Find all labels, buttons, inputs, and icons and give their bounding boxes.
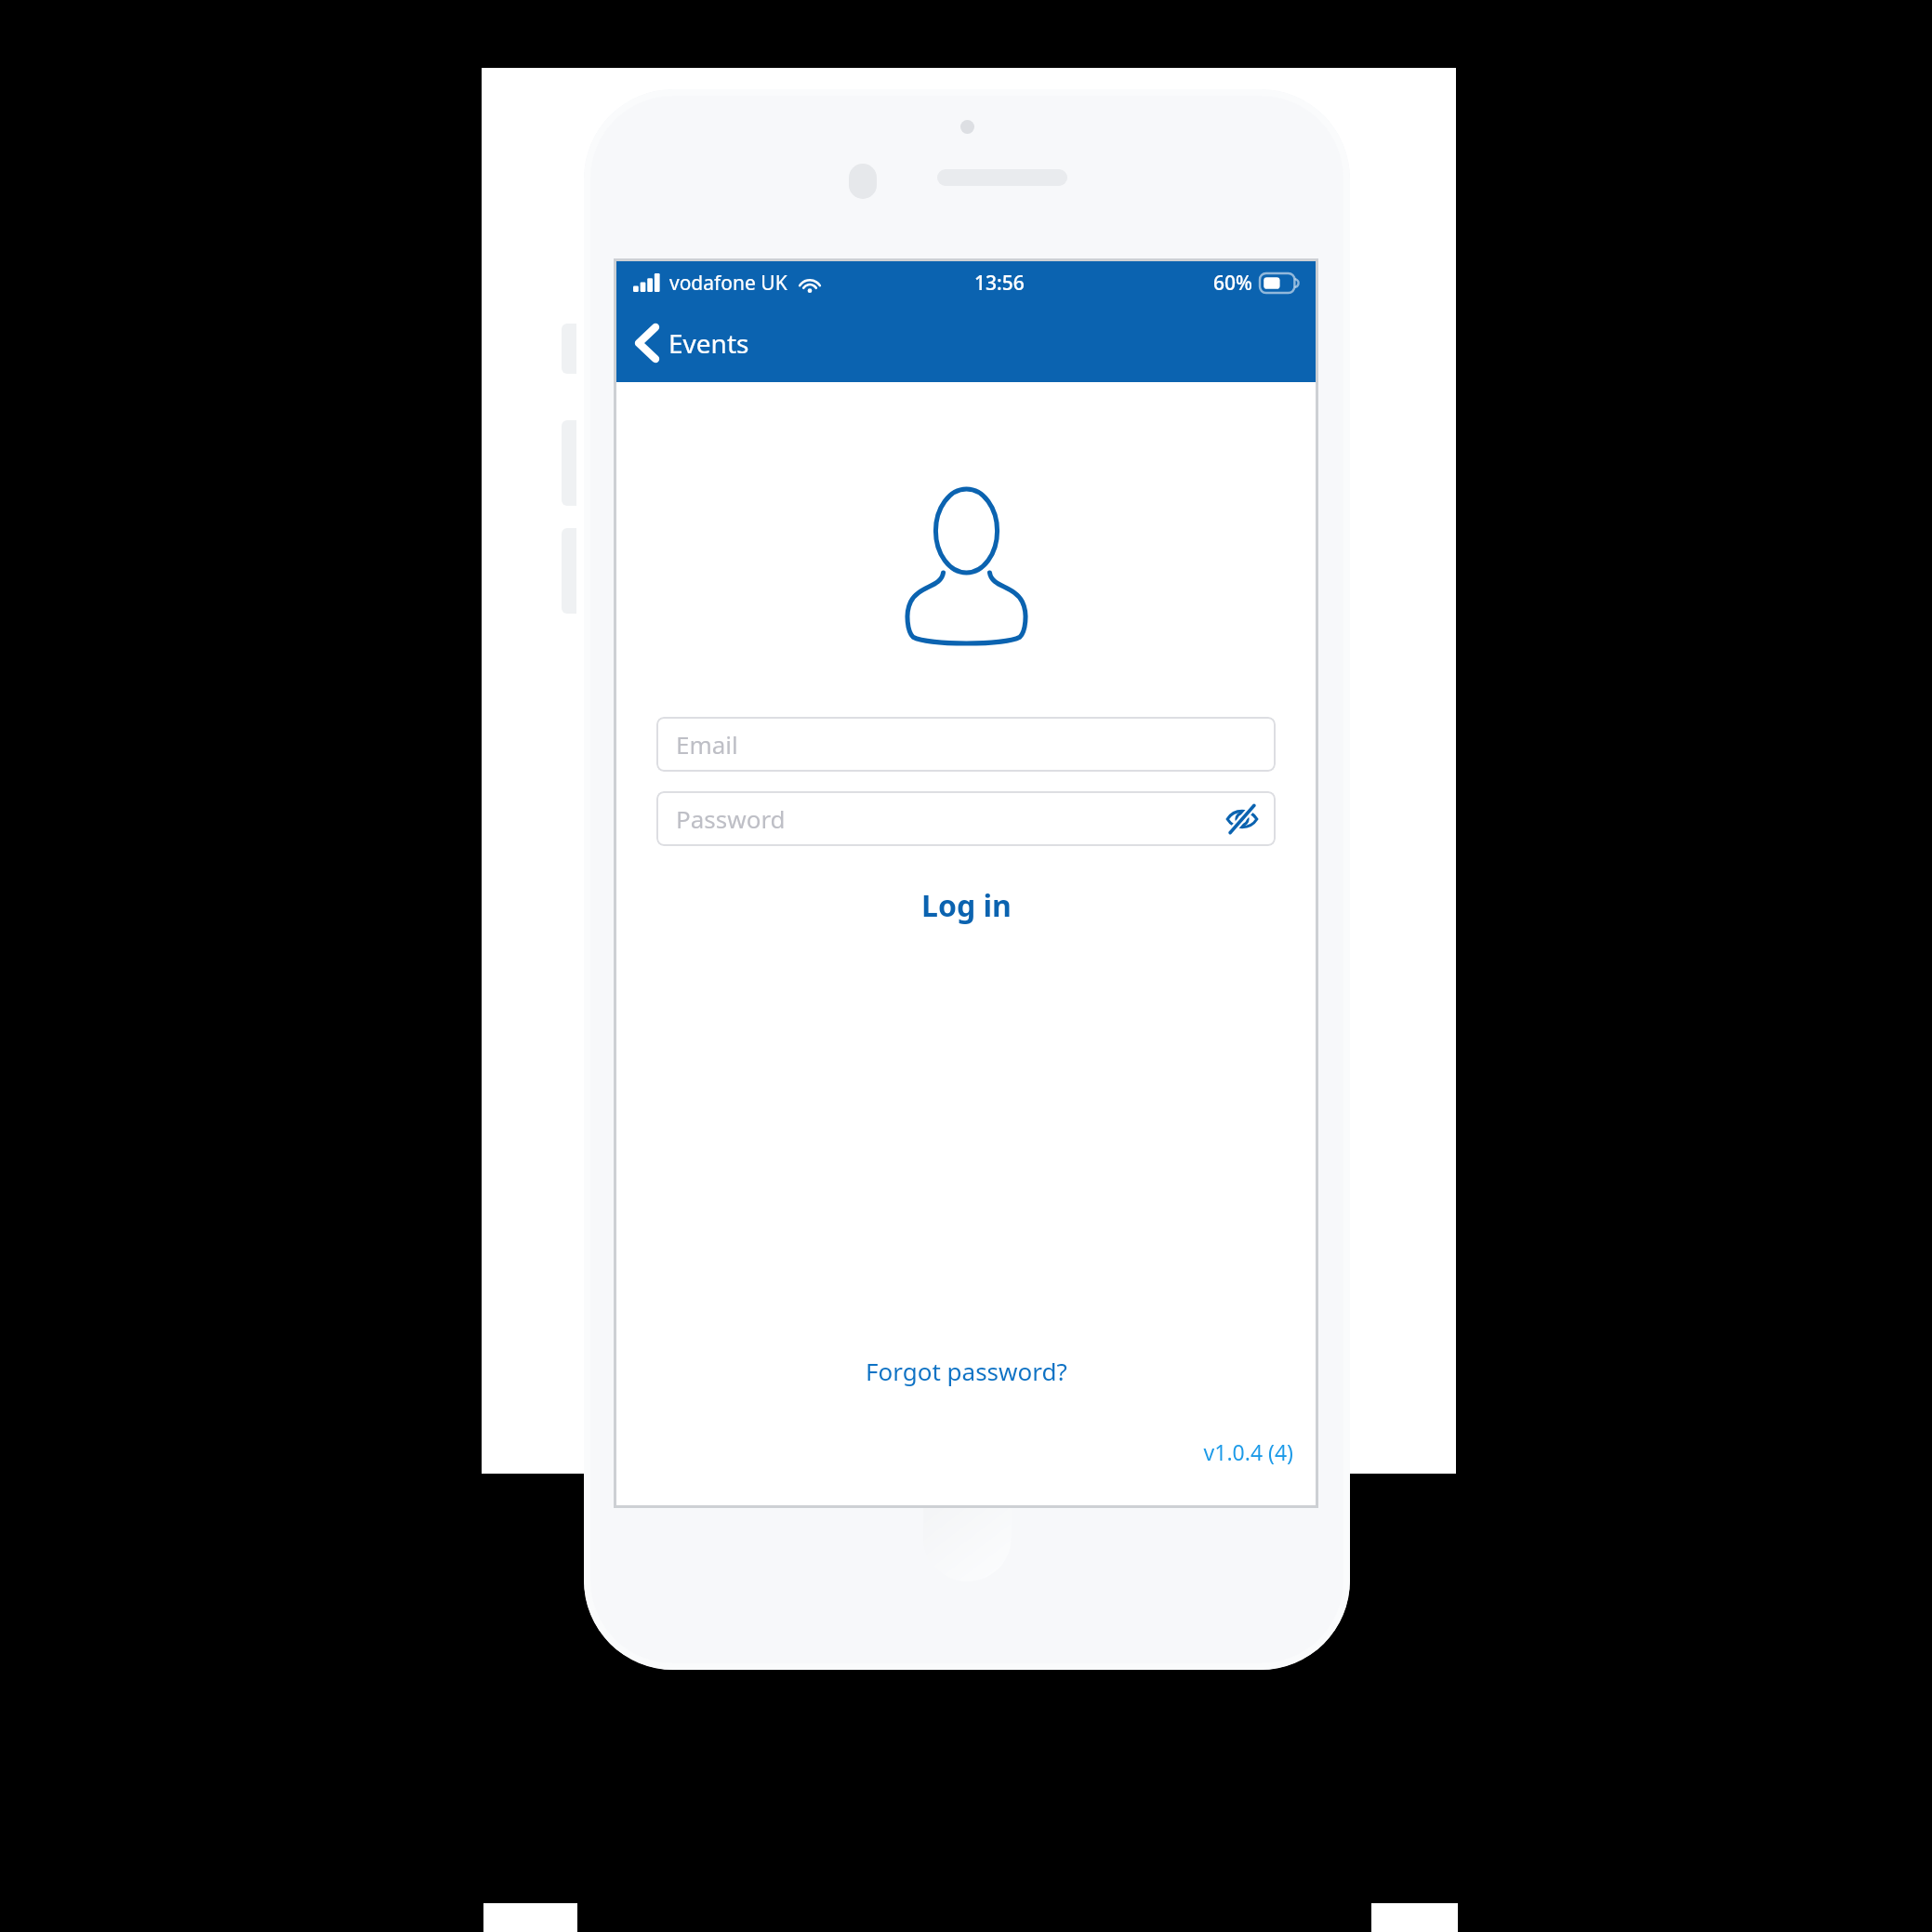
staticText: 60% xyxy=(1213,270,1252,297)
staticText: v1.0.4 (4) xyxy=(616,1437,1293,1466)
staticText: 13:56 xyxy=(974,270,1025,297)
button[interactable]: Log in xyxy=(616,876,1316,935)
staticText: Events xyxy=(668,325,749,361)
button[interactable]: Show password xyxy=(1222,799,1263,840)
button[interactable]: Password xyxy=(656,791,1276,846)
button[interactable]: Email xyxy=(656,717,1276,772)
button[interactable]: Forgot password? xyxy=(616,1346,1316,1395)
staticText: vodafone UK xyxy=(669,270,787,297)
button[interactable]: Back xyxy=(616,304,1316,382)
staticText: Forgot password? xyxy=(866,1355,1067,1387)
other: Back xyxy=(629,325,665,361)
staticText: Log in xyxy=(921,885,1012,926)
staticText: Email xyxy=(676,728,738,761)
staticText: Password xyxy=(676,802,786,835)
